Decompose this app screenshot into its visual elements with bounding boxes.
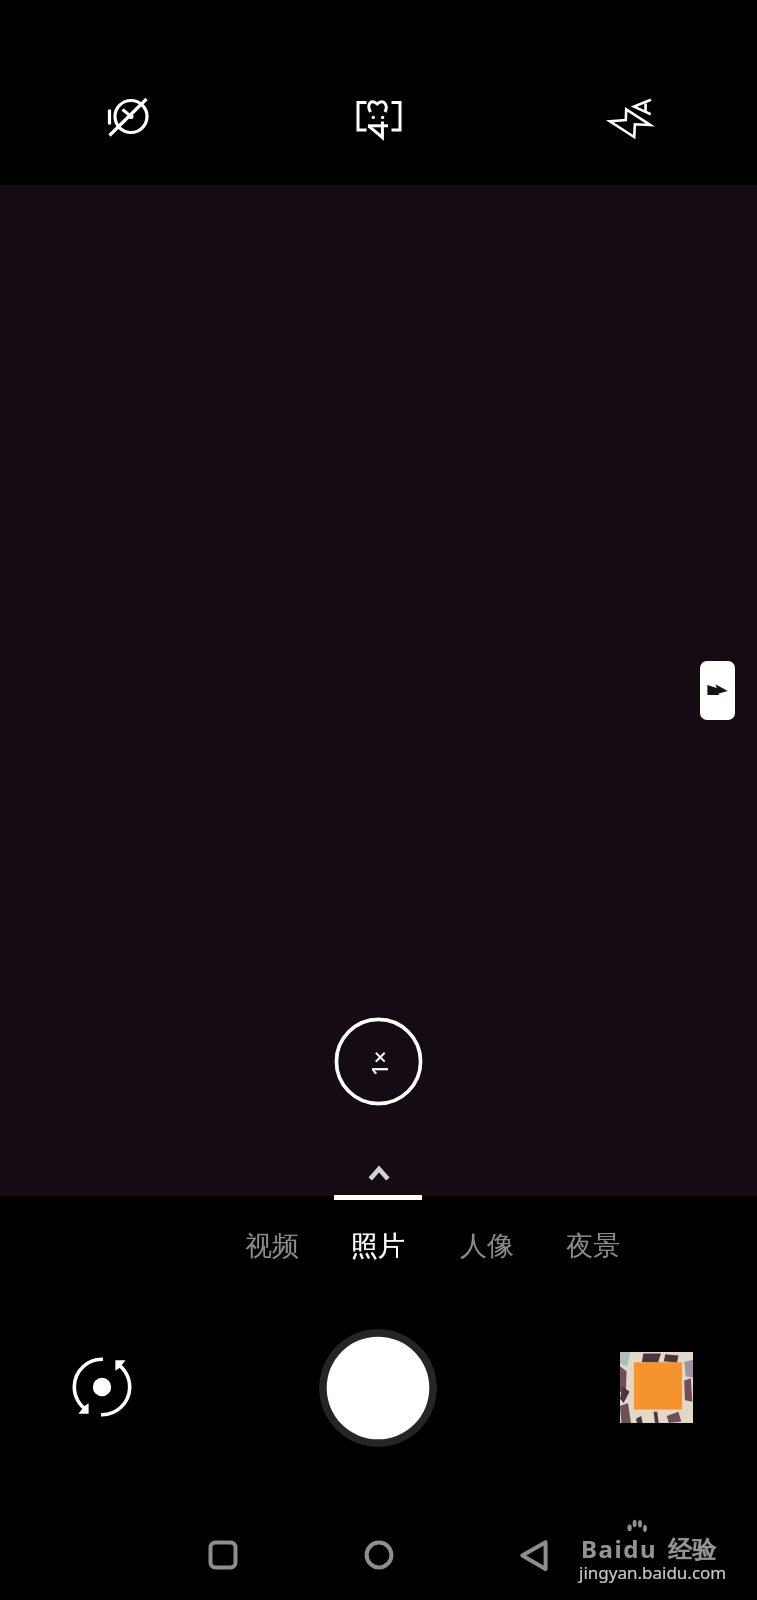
button[interactable]: AI photography — [338, 78, 418, 158]
button[interactable]: Flash auto — [591, 78, 671, 158]
button[interactable]: Home — [339, 1515, 419, 1595]
staticText: 视频 — [245, 1229, 299, 1263]
button[interactable]: 夜景 — [555, 1218, 631, 1274]
button[interactable]: Switch camera — [62, 1347, 142, 1427]
staticText: 照片 — [351, 1229, 405, 1263]
button[interactable]: Back — [494, 1515, 574, 1595]
button[interactable]: Timer off — [91, 78, 171, 158]
button[interactable]: 视频 — [234, 1218, 310, 1274]
staticText: 经验 — [668, 1535, 716, 1565]
staticText: Baidu — [581, 1532, 658, 1565]
button[interactable]: Open settings panel — [700, 661, 735, 720]
staticText: 1× — [364, 1050, 394, 1076]
button[interactable]: Gallery — [620, 1352, 693, 1423]
staticText: 夜景 — [566, 1229, 620, 1263]
button[interactable]: 人像 — [449, 1218, 525, 1274]
staticText: 人像 — [460, 1229, 514, 1263]
button[interactable]: Take photo — [319, 1329, 437, 1447]
staticText: jingyan.baidu.com — [579, 1561, 727, 1584]
button[interactable]: Recents — [183, 1515, 263, 1595]
button[interactable]: 照片 — [340, 1218, 416, 1274]
button[interactable]: Zoom 1x — [334, 1017, 423, 1106]
button[interactable]: Show more modes — [348, 1155, 408, 1191]
